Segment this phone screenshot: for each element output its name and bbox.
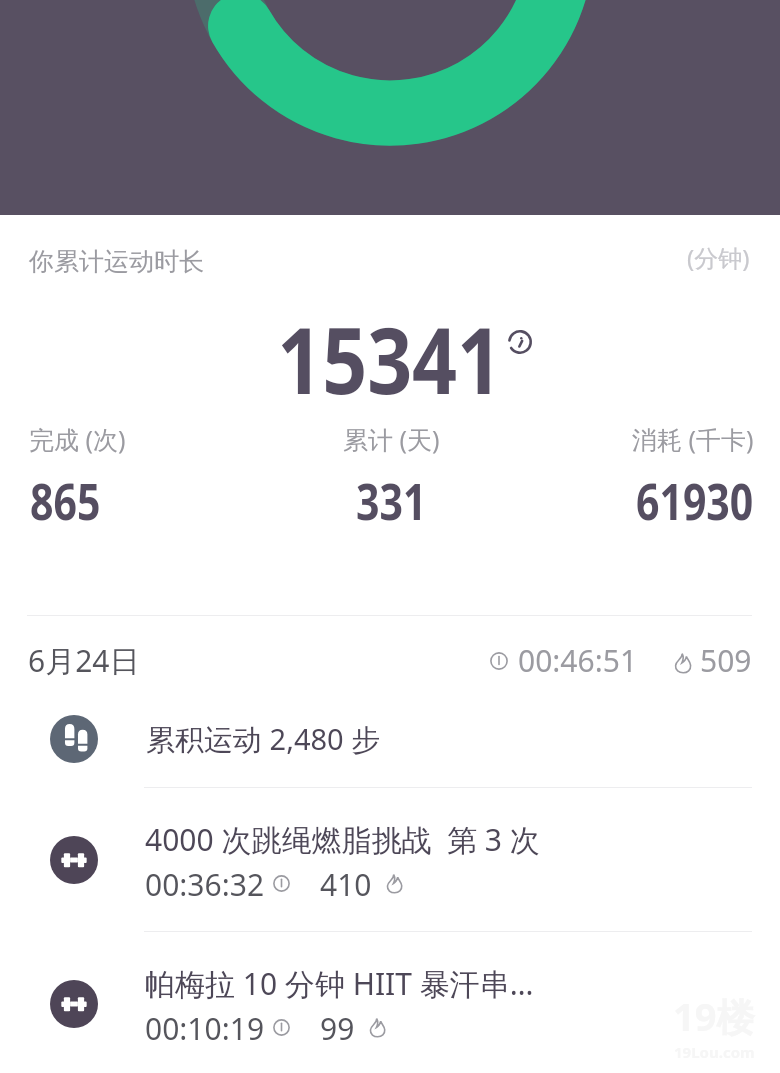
staticText: 4000 次跳绳燃脂挑战 第 3 次 <box>145 819 565 860</box>
staticText: 331 <box>356 467 426 535</box>
staticText: 你累计运动时长 <box>29 246 204 277</box>
staticText: 865 <box>30 467 100 535</box>
staticText: 6月24日 <box>28 640 140 681</box>
staticText: (分钟) <box>687 241 750 274</box>
staticText: 累计 (天) <box>343 422 440 456</box>
staticText: 509 <box>700 640 752 681</box>
staticText: 完成 (次) <box>29 422 126 456</box>
staticText: 15341 <box>277 296 503 421</box>
staticText: 累积运动 2,480 步 <box>146 719 381 759</box>
button[interactable]: 帕梅拉 10 分钟 HIIT 暴汗串… <box>0 944 780 1073</box>
button[interactable]: 累积运动 2,480 步 <box>0 690 780 787</box>
other: Info <box>508 330 532 354</box>
staticText: 410 <box>320 864 372 905</box>
staticText: 帕梅拉 10 分钟 HIIT 暴汗串… <box>145 963 565 1004</box>
staticText: 00:46:51 <box>518 640 638 681</box>
staticText: 00:36:32 <box>145 864 265 905</box>
staticText: 99 <box>320 1008 355 1049</box>
staticText: 19楼 <box>673 990 755 1042</box>
button[interactable]: 4000 次跳绳燃脂挑战 第 3 次 <box>0 800 780 931</box>
staticText: 消耗 (千卡) <box>632 422 754 456</box>
staticText: 61930 <box>636 467 753 535</box>
staticText: 19Lou.com <box>674 1042 755 1062</box>
staticText: 00:10:19 <box>145 1008 265 1049</box>
